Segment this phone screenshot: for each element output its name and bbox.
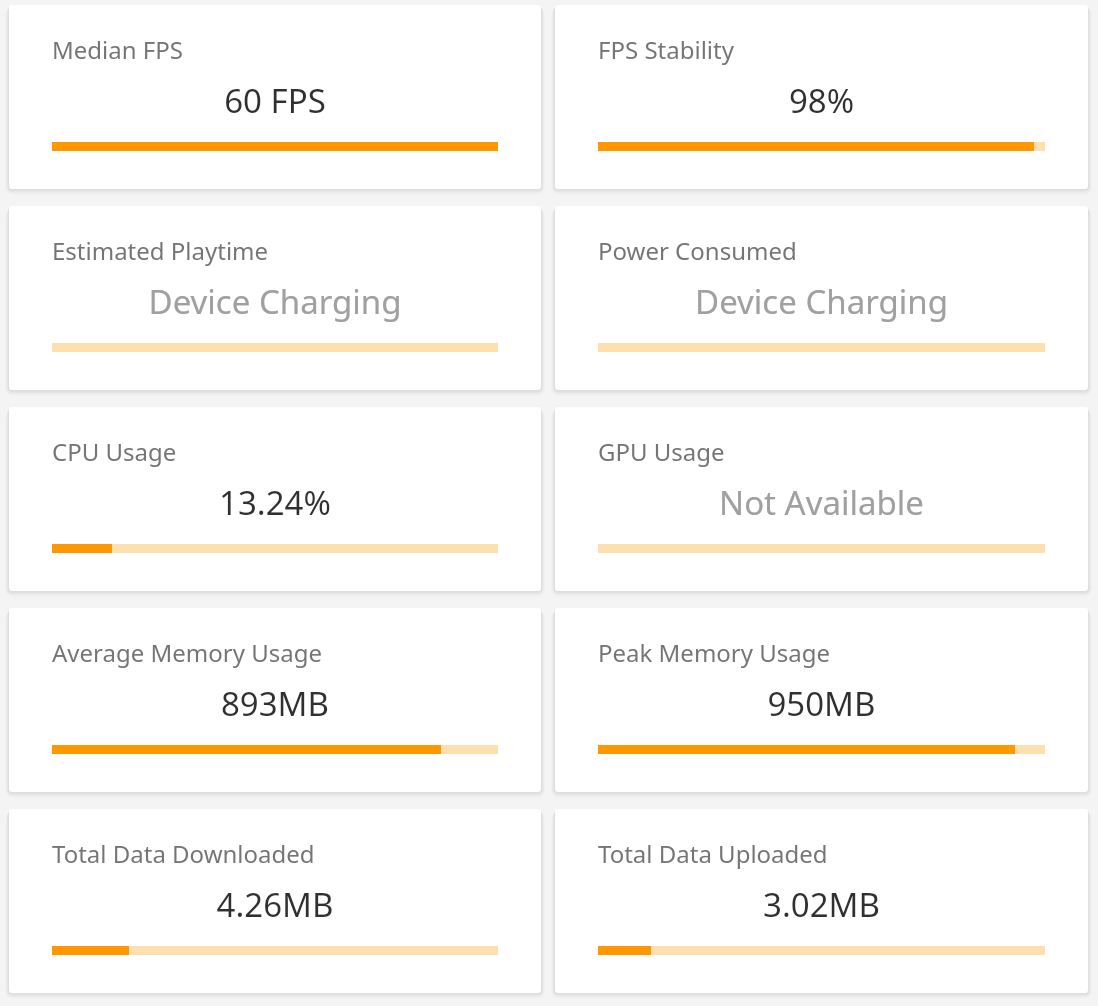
- staticText: Total Data Uploaded: [598, 837, 828, 870]
- staticText: Peak Memory Usage: [598, 636, 831, 669]
- button[interactable]: Total Data Downloaded: [9, 809, 541, 993]
- staticText: 13.24%: [52, 480, 498, 525]
- staticText: Device Charging: [598, 279, 1045, 324]
- button[interactable]: GPU Usage: [555, 407, 1088, 591]
- staticText: 950MB: [598, 681, 1045, 726]
- button[interactable]: Total Data Uploaded: [555, 809, 1088, 993]
- staticText: Total Data Downloaded: [52, 837, 315, 870]
- staticText: Average Memory Usage: [52, 636, 322, 669]
- button[interactable]: CPU Usage: [9, 407, 541, 591]
- staticText: Device Charging: [52, 279, 498, 324]
- staticText: CPU Usage: [52, 435, 177, 468]
- staticText: 4.26MB: [52, 882, 498, 927]
- staticText: FPS Stability: [598, 33, 734, 66]
- button[interactable]: FPS Stability: [555, 5, 1088, 189]
- button[interactable]: Average Memory Usage: [9, 608, 541, 792]
- staticText: 98%: [598, 78, 1045, 123]
- button[interactable]: Estimated Playtime: [9, 206, 541, 390]
- button[interactable]: Power Consumed: [555, 206, 1088, 390]
- staticText: 893MB: [52, 681, 498, 726]
- staticText: Median FPS: [52, 33, 183, 66]
- staticText: 3.02MB: [598, 882, 1045, 927]
- staticText: Power Consumed: [598, 234, 797, 267]
- staticText: GPU Usage: [598, 435, 725, 468]
- staticText: Estimated Playtime: [52, 234, 269, 267]
- staticText: Not Available: [598, 480, 1045, 525]
- button[interactable]: Median FPS: [9, 5, 541, 189]
- staticText: 60 FPS: [52, 78, 498, 123]
- button[interactable]: Peak Memory Usage: [555, 608, 1088, 792]
